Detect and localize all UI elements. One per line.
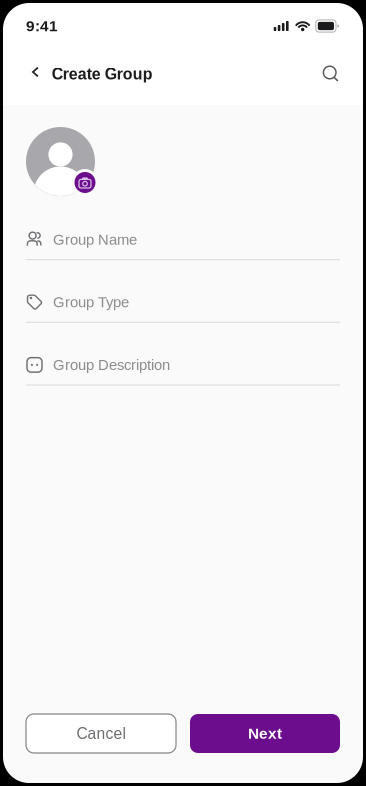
staticText: Group Description [53, 357, 170, 373]
button[interactable]: Cancel [26, 714, 176, 753]
staticText: Cancel [76, 725, 125, 742]
button[interactable]: Next [190, 714, 340, 753]
staticText: Group Name [53, 231, 137, 248]
button[interactable]: Group Description [26, 346, 340, 386]
button[interactable]: Create Group [3, 49, 169, 99]
staticText: 9:41 [26, 17, 58, 34]
staticText: Next [248, 725, 282, 742]
button[interactable]: Search [308, 49, 354, 99]
button[interactable]: Group Name [26, 221, 340, 260]
button[interactable]: Change group photo [26, 127, 95, 196]
staticText: Group Type [53, 294, 129, 310]
button[interactable]: Group Type [26, 284, 340, 323]
staticText: Create Group [52, 65, 153, 83]
